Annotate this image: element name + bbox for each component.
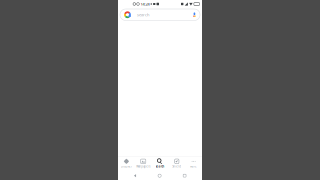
staticText: Wallpapers (136, 165, 150, 168)
button[interactable]: Search (152, 157, 168, 170)
staticText: More (190, 165, 197, 168)
staticText: 14:24 (140, 1, 149, 7)
staticText: Search (155, 165, 164, 168)
button[interactable]: Shield (168, 157, 185, 170)
button[interactable]: Home (152, 170, 167, 180)
button[interactable]: Discover (118, 157, 135, 170)
staticText: Discover (121, 165, 132, 168)
button[interactable]: Wallpapers (135, 157, 152, 170)
button[interactable]: Back (128, 170, 142, 180)
button[interactable]: Recents (177, 170, 192, 180)
staticText: Shield (172, 165, 181, 168)
button[interactable]: More (185, 157, 202, 170)
staticText: search (137, 12, 149, 17)
